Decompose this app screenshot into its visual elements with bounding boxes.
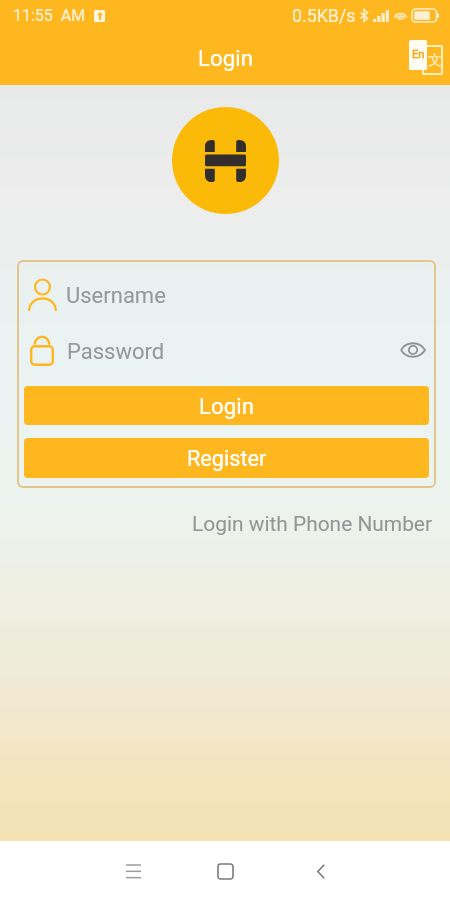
button[interactable]: Home (201, 847, 249, 895)
staticText: Login (199, 393, 254, 419)
staticText: 11:55 AM (13, 6, 86, 25)
button[interactable]: Change language (409, 40, 443, 78)
staticText: Username (66, 283, 166, 309)
staticText: En (412, 48, 425, 61)
button[interactable]: Show password (395, 332, 431, 368)
button[interactable]: Login (24, 386, 429, 425)
button[interactable]: Login with Phone Number (192, 512, 450, 536)
staticText: 0.5KB/s (292, 5, 356, 26)
button[interactable]: Back (297, 847, 345, 895)
button[interactable]: Password (24, 328, 429, 372)
staticText: Register (187, 446, 267, 471)
button[interactable]: Register (24, 438, 429, 478)
staticText: 文 (428, 52, 442, 70)
staticText: Password (67, 339, 165, 365)
button[interactable]: Recent apps (109, 847, 157, 895)
button[interactable]: Username (24, 260, 429, 328)
staticText: Login (198, 45, 253, 71)
